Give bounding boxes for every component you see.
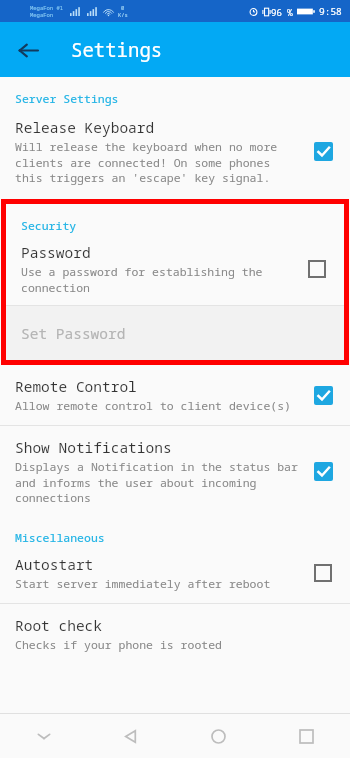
button[interactable]: Set Password xyxy=(6,306,344,360)
button[interactable]: Autostart xyxy=(0,550,350,603)
staticText: Allow remote control to client device(s) xyxy=(15,398,291,414)
button[interactable]: Recents xyxy=(262,714,350,758)
staticText: K/s xyxy=(118,11,128,18)
staticText: Displays a Notification in the status ba… xyxy=(15,459,298,505)
button[interactable]: Hide keyboard xyxy=(0,714,87,758)
staticText: Miscellaneous xyxy=(15,530,105,546)
staticText: 9:58 xyxy=(319,5,342,18)
staticText: Security xyxy=(21,218,77,234)
button[interactable]: Release Keyboard xyxy=(0,111,350,199)
button[interactable]: Root check xyxy=(0,604,350,664)
button[interactable]: Password xyxy=(6,238,344,305)
staticText: Will release the keyboard when no more c… xyxy=(15,139,298,185)
staticText: Server Settings xyxy=(15,91,119,107)
staticText: Autostart xyxy=(15,554,94,574)
staticText: MegaFon #1 xyxy=(30,4,64,11)
staticText: 96 % xyxy=(271,6,293,18)
staticText: Show Notifications xyxy=(15,437,172,457)
staticText: Checks if your phone is rooted xyxy=(15,637,222,653)
staticText: 0 xyxy=(121,4,125,11)
staticText: Start server immediately after reboot xyxy=(15,576,271,592)
staticText: Set Password xyxy=(21,323,126,343)
staticText: Release Keyboard xyxy=(15,117,155,137)
staticText: Remote Control xyxy=(15,376,137,396)
staticText: Use a password for establishing the conn… xyxy=(21,264,292,295)
staticText: Password xyxy=(21,242,91,262)
staticText: MegaFon xyxy=(30,11,54,18)
button[interactable]: Home xyxy=(174,714,262,758)
button[interactable]: Back xyxy=(87,714,174,758)
button[interactable]: Show Notifications xyxy=(0,426,350,516)
button[interactable]: Remote Control xyxy=(0,365,350,425)
staticText: Root check xyxy=(15,615,102,635)
button[interactable]: Back xyxy=(8,30,48,70)
staticText: Settings xyxy=(71,37,163,63)
